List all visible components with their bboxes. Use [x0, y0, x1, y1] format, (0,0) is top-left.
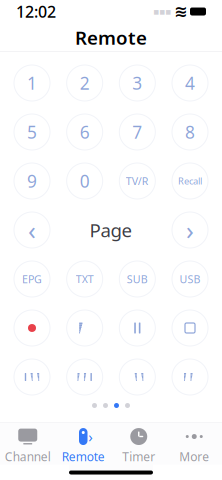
button[interactable]: 2 [67, 65, 103, 101]
staticText: 9 [27, 169, 37, 192]
button[interactable]: 8 [172, 114, 208, 150]
button[interactable]: 6 [67, 114, 103, 150]
staticText: › [186, 213, 194, 247]
button[interactable] [172, 359, 208, 395]
staticText: Recall [178, 175, 202, 187]
staticText: Channel [5, 448, 51, 464]
staticText: 12:02 [16, 1, 56, 22]
button[interactable]: SUB [119, 261, 155, 297]
staticText: TXT [76, 272, 94, 286]
button[interactable]: EPG [14, 261, 50, 297]
button[interactable]: TV/R [119, 163, 155, 199]
staticText: 0 [80, 169, 90, 192]
button[interactable]: 3 [119, 65, 155, 101]
button[interactable]: ‹ [14, 212, 50, 248]
staticText: TV/R [126, 174, 149, 188]
button[interactable] [67, 359, 103, 395]
staticText: 5 [27, 120, 37, 143]
staticText: 1 [27, 71, 37, 94]
button[interactable]: 5 [14, 114, 50, 150]
staticText: › [88, 427, 93, 446]
staticText: USB [179, 272, 200, 286]
staticText: ≋ [174, 2, 187, 21]
staticText: 7 [132, 120, 142, 143]
button[interactable]: 4 [172, 65, 208, 101]
staticText: Remote [75, 25, 147, 50]
button[interactable] [119, 310, 155, 346]
button[interactable]: TXT [67, 261, 103, 297]
button[interactable] [14, 359, 50, 395]
staticText: 4 [185, 71, 195, 94]
button[interactable]: More [166, 420, 222, 466]
button[interactable]: › [55, 420, 111, 466]
staticText: 2 [80, 71, 90, 94]
staticText: More [179, 448, 209, 464]
button[interactable]: Timer [111, 420, 166, 466]
staticText: 6 [80, 120, 90, 143]
button[interactable] [119, 359, 155, 395]
button[interactable] [14, 310, 50, 346]
staticText: EPG [22, 272, 42, 286]
staticText: Remote [62, 448, 105, 464]
button[interactable]: 9 [14, 163, 50, 199]
button[interactable] [67, 310, 103, 346]
button[interactable]: USB [172, 261, 208, 297]
button[interactable]: Recall [172, 163, 208, 199]
staticText: 3 [132, 71, 142, 94]
staticText: Timer [122, 448, 155, 464]
button[interactable]: 7 [119, 114, 155, 150]
staticText: Page [89, 218, 132, 242]
staticText: ▪▪▪ [153, 6, 171, 17]
staticText: 8 [185, 120, 195, 143]
staticText: ‹ [28, 213, 36, 247]
button[interactable] [172, 310, 208, 346]
button[interactable]: 1 [14, 65, 50, 101]
button[interactable]: 0 [67, 163, 103, 199]
button[interactable]: › [172, 212, 208, 248]
staticText: SUB [127, 272, 148, 286]
button[interactable]: Channel [0, 420, 55, 466]
